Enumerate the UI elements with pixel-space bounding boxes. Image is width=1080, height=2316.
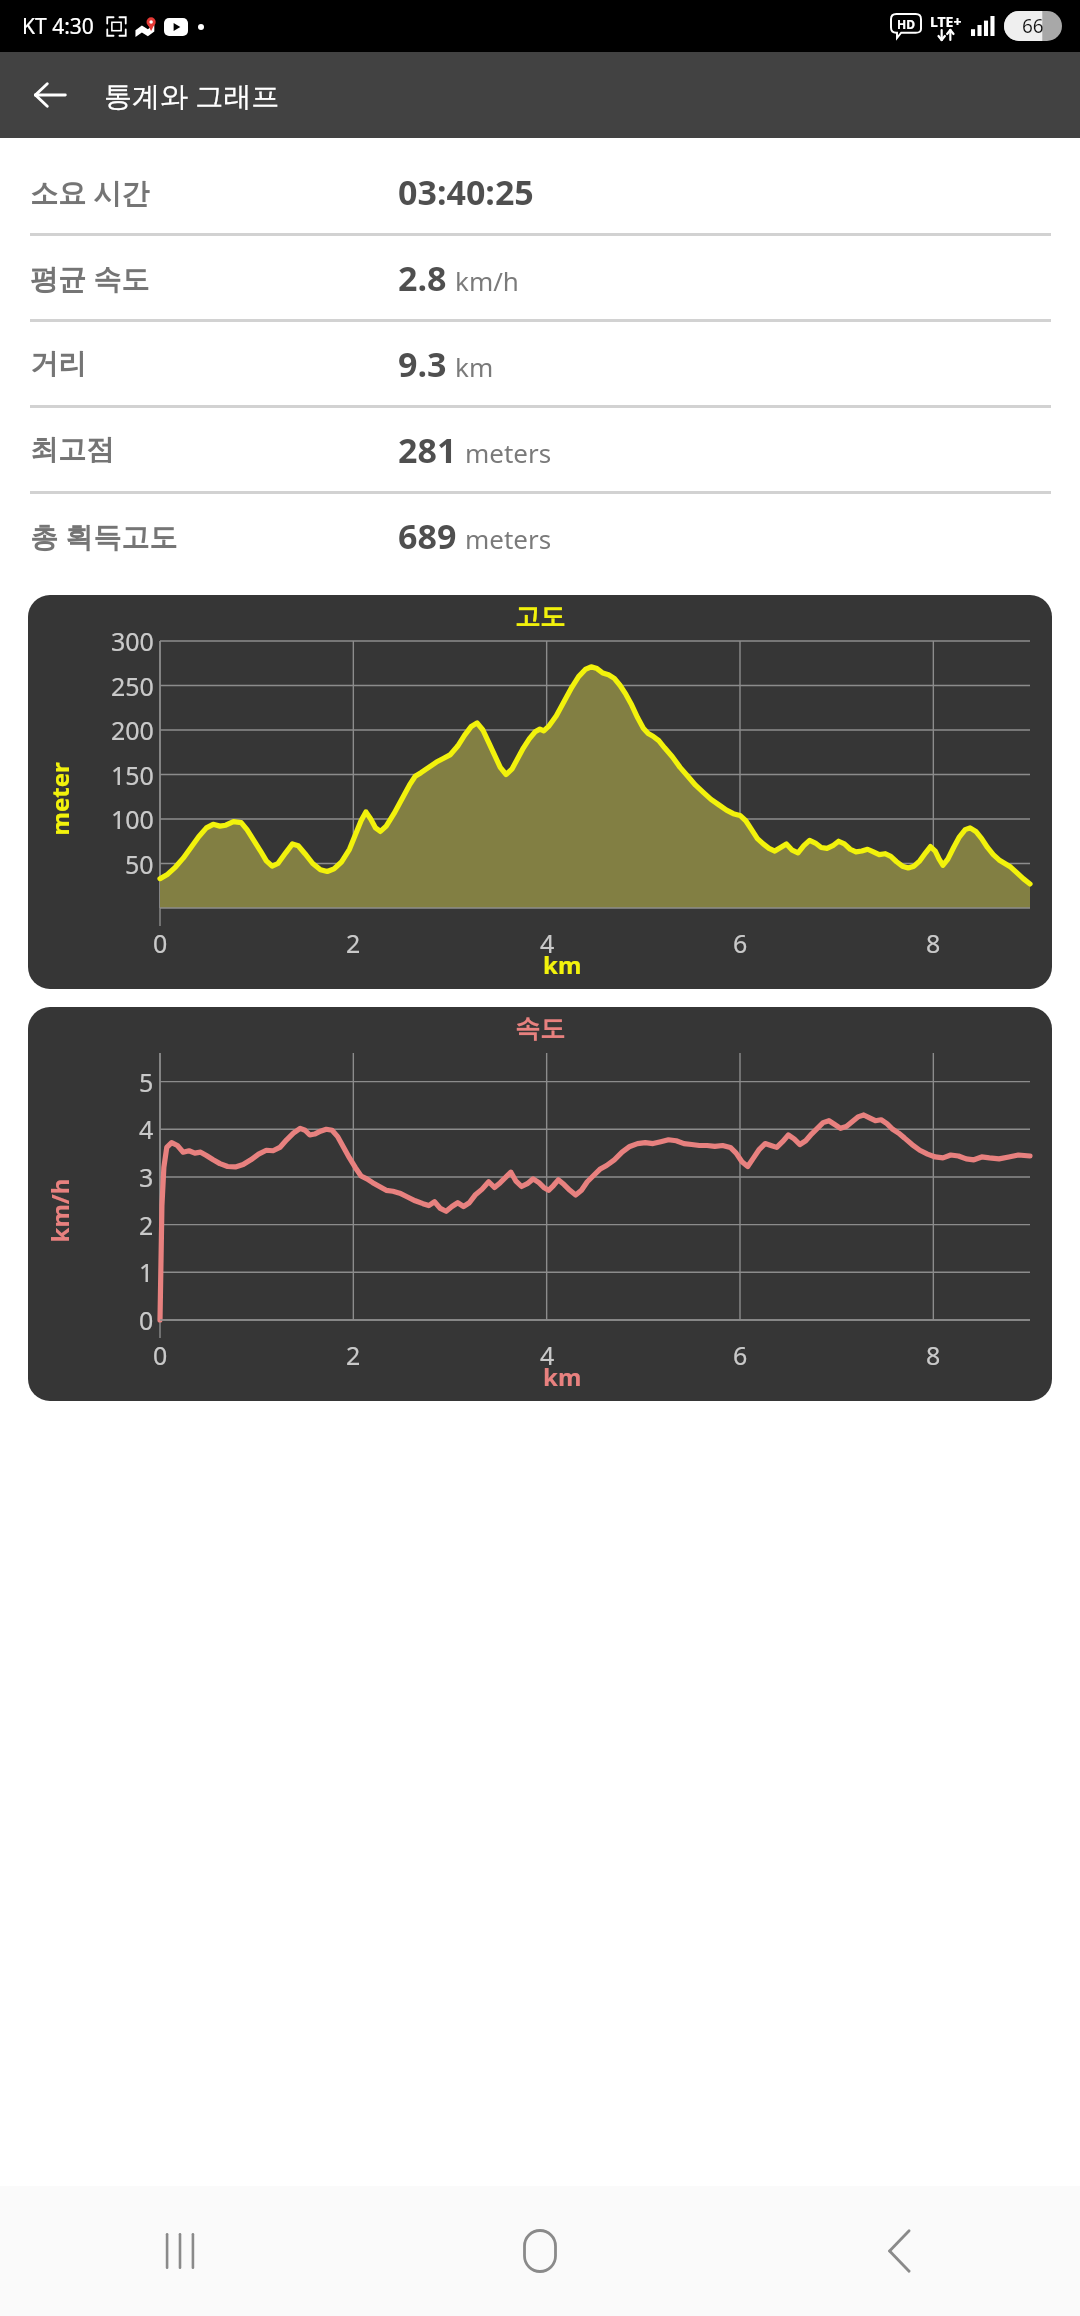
staticText: 03:40:25 [398, 169, 534, 215]
staticText: 8 [926, 926, 941, 960]
staticText: 0 [153, 926, 168, 960]
staticText: 50 [125, 847, 154, 881]
staticText: 2 [139, 1208, 154, 1242]
staticText: 6 [733, 926, 748, 960]
staticText: meters [465, 435, 552, 470]
staticText: 0 [153, 1338, 168, 1372]
button[interactable]: 최고점 [0, 408, 1080, 491]
button[interactable]: 고도 [28, 595, 1052, 989]
staticText: km [543, 948, 582, 981]
staticText: 0 [139, 1303, 154, 1337]
staticText: 4 [139, 1112, 154, 1146]
button[interactable]: 평균 속도 [0, 236, 1080, 319]
staticText: km [455, 349, 494, 384]
staticText: km/h [455, 263, 519, 298]
staticText: 속도 [515, 1013, 565, 1044]
button[interactable]: Home [360, 2186, 720, 2316]
staticText: 1 [139, 1255, 154, 1289]
staticText: 4 [540, 926, 555, 960]
staticText: meters [465, 521, 552, 556]
staticText: 2.8 [398, 255, 447, 301]
staticText: 281 [398, 427, 457, 473]
staticText: meter [42, 761, 75, 835]
staticText: 100 [111, 802, 154, 836]
staticText: 고도 [515, 601, 565, 632]
staticText: LTE+ [930, 12, 962, 31]
staticText: 66 [1022, 13, 1044, 39]
button[interactable]: 속도 [28, 1007, 1052, 1401]
staticText: 소요 시간 [30, 173, 150, 211]
staticText: 300 [111, 624, 154, 658]
staticText: 200 [111, 713, 154, 747]
button[interactable]: Back [18, 63, 82, 127]
staticText: 9.3 [398, 341, 447, 387]
staticText: 4 [540, 1338, 555, 1372]
staticText: HD [897, 16, 915, 32]
staticText: 689 [398, 513, 457, 559]
staticText: 8 [926, 1338, 941, 1372]
staticText: 250 [111, 669, 154, 703]
staticText: 거리 [30, 346, 86, 381]
staticText: km [543, 1360, 582, 1393]
staticText: 150 [111, 758, 154, 792]
button[interactable]: 거리 [0, 322, 1080, 405]
staticText: 6 [733, 1338, 748, 1372]
staticText: 최고점 [30, 432, 114, 467]
button[interactable]: 총 획득고도 [0, 494, 1080, 577]
staticText: 평균 속도 [30, 259, 150, 297]
staticText: 5 [139, 1065, 154, 1099]
button[interactable]: Recent apps [0, 2186, 360, 2316]
staticText: 2 [346, 1338, 361, 1372]
staticText: 3 [139, 1160, 154, 1194]
staticText: KT 4:30 [22, 12, 94, 41]
staticText: km/h [42, 1178, 75, 1242]
staticText: 총 획득고도 [30, 517, 178, 555]
button[interactable]: Back [720, 2186, 1080, 2316]
button[interactable]: 소요 시간 [0, 150, 1080, 233]
staticText: 통계와 그래프 [104, 76, 280, 114]
staticText: 2 [346, 926, 361, 960]
